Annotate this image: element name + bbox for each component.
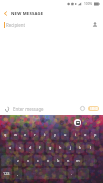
staticText: e xyxy=(24,132,27,137)
button[interactable]: Contacts xyxy=(89,19,101,31)
button[interactable]: x xyxy=(24,155,32,166)
staticText: c xyxy=(37,158,39,163)
button[interactable]: i xyxy=(71,129,79,140)
staticText: u xyxy=(64,132,67,137)
staticText: v xyxy=(47,158,49,163)
button[interactable]: Emoji xyxy=(77,103,88,114)
staticText: Enter message xyxy=(13,106,44,112)
button[interactable]: z xyxy=(14,155,22,166)
button[interactable]: m xyxy=(74,155,82,166)
button[interactable]: r xyxy=(31,129,39,140)
button[interactable]: f xyxy=(36,142,44,153)
staticText: Recipient xyxy=(6,22,26,28)
button[interactable]: y xyxy=(51,129,59,140)
button[interactable]: v xyxy=(44,155,52,166)
staticText: f xyxy=(39,145,41,150)
staticText: p xyxy=(94,132,97,137)
button[interactable]: Attach xyxy=(0,102,13,115)
button[interactable]: Back xyxy=(0,8,11,19)
staticText: . xyxy=(71,171,73,176)
staticText: d xyxy=(29,145,32,150)
button[interactable]: d xyxy=(26,142,34,153)
button[interactable]: l xyxy=(86,142,94,153)
button[interactable]: n xyxy=(64,155,72,166)
button[interactable]: u xyxy=(61,129,69,140)
button[interactable]: c xyxy=(34,155,42,166)
staticText: q xyxy=(4,132,7,137)
button[interactable]: g xyxy=(46,142,54,153)
button[interactable]: , xyxy=(14,168,22,179)
button[interactable]: q xyxy=(1,129,9,140)
button[interactable]: Shift xyxy=(1,155,12,166)
button[interactable]: o xyxy=(81,129,89,140)
button[interactable]: w xyxy=(11,129,19,140)
button[interactable]: h xyxy=(56,142,64,153)
staticText: s xyxy=(19,145,21,150)
staticText: , xyxy=(17,171,19,176)
button[interactable]: Backspace xyxy=(84,155,95,166)
button[interactable]: Enter xyxy=(78,168,89,179)
staticText: a xyxy=(9,145,12,150)
button[interactable]: SEND xyxy=(88,106,99,111)
staticText: k xyxy=(79,145,82,150)
button[interactable]: s xyxy=(16,142,24,153)
staticText: n xyxy=(67,158,70,163)
staticText: y xyxy=(54,132,56,137)
staticText: b xyxy=(57,158,60,163)
staticText: t xyxy=(44,132,46,137)
button[interactable]: p xyxy=(91,129,99,140)
button[interactable]: Stickers xyxy=(74,119,81,126)
staticText: l xyxy=(90,145,91,150)
button[interactable]: t xyxy=(41,129,49,140)
staticText: 100% xyxy=(84,2,93,6)
staticText: o xyxy=(84,132,87,137)
button[interactable]: . xyxy=(68,168,76,179)
button[interactable]: k xyxy=(76,142,84,153)
staticText: r xyxy=(34,132,36,137)
staticText: m xyxy=(76,158,80,163)
staticText: j xyxy=(70,145,71,150)
button[interactable]: e xyxy=(21,129,29,140)
button[interactable]: 123 xyxy=(1,168,12,179)
button[interactable]: j xyxy=(66,142,74,153)
staticText: g xyxy=(49,145,52,150)
staticText: h xyxy=(59,145,62,150)
button[interactable]: a xyxy=(6,142,14,153)
staticText: SEND xyxy=(90,107,98,111)
staticText: NEW MESSAGE xyxy=(11,11,44,17)
button[interactable]: b xyxy=(54,155,62,166)
staticText: 123 xyxy=(3,171,10,176)
staticText: z xyxy=(17,158,19,163)
staticText: x xyxy=(27,158,30,163)
button[interactable]: Space xyxy=(24,168,66,179)
staticText: i xyxy=(75,132,76,137)
staticText: w xyxy=(14,132,17,137)
